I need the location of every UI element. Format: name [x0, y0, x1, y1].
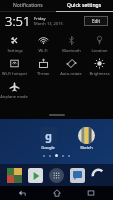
staticText: March 13, 2015: [34, 21, 63, 26]
button[interactable]: Wi-Fi: [29, 32, 57, 55]
button[interactable]: Brightness: [85, 55, 113, 78]
button[interactable]: Location: [85, 32, 113, 55]
button[interactable]: Bluetooth: [57, 32, 85, 55]
button[interactable]: g: [36, 127, 60, 150]
button[interactable]: Sketch: [74, 127, 98, 150]
button[interactable]: Recents: [78, 186, 104, 200]
staticText: Airplane mode: [0, 94, 28, 99]
staticText: Edit: [92, 18, 101, 24]
button[interactable]: Airplane mode: [0, 78, 28, 101]
button[interactable]: Apps folder: [5, 166, 24, 185]
staticText: Friday: [34, 16, 46, 21]
staticText: 3:51: [5, 12, 31, 30]
button[interactable]: Throw: [29, 55, 57, 78]
staticText: Wi-Fi: [38, 48, 48, 53]
staticText: Quick settings: [67, 2, 102, 9]
staticText: Location: [91, 48, 108, 53]
staticText: Throw: [37, 71, 49, 76]
button[interactable]: Wi-Fi hotspot: [0, 55, 29, 78]
staticText: Google: [41, 145, 55, 150]
staticText: Notifications: [13, 2, 43, 9]
button[interactable]: Auto-rotate: [57, 55, 85, 78]
staticText: g: [45, 128, 52, 143]
staticText: Wi-Fi hotspot: [2, 71, 27, 76]
button[interactable]: Edit: [84, 16, 108, 26]
button[interactable]: Messaging: [68, 166, 87, 185]
button[interactable]: App drawer: [47, 166, 66, 185]
button[interactable]: Quick settings: [56, 0, 113, 11]
staticText: Sketch: [80, 145, 93, 150]
button[interactable]: Notifications: [0, 0, 56, 11]
button[interactable]: Home: [44, 186, 70, 200]
staticText: Settings: [7, 48, 23, 53]
button[interactable]: Back: [9, 186, 35, 200]
button[interactable]: Phone: [89, 166, 108, 185]
staticText: Bluetooth: [62, 48, 81, 53]
button[interactable]: Play Store: [26, 166, 45, 185]
button[interactable]: [49, 114, 65, 116]
staticText: Auto-rotate: [60, 71, 82, 76]
button[interactable]: Settings: [0, 32, 29, 55]
staticText: Brightness: [89, 71, 110, 76]
